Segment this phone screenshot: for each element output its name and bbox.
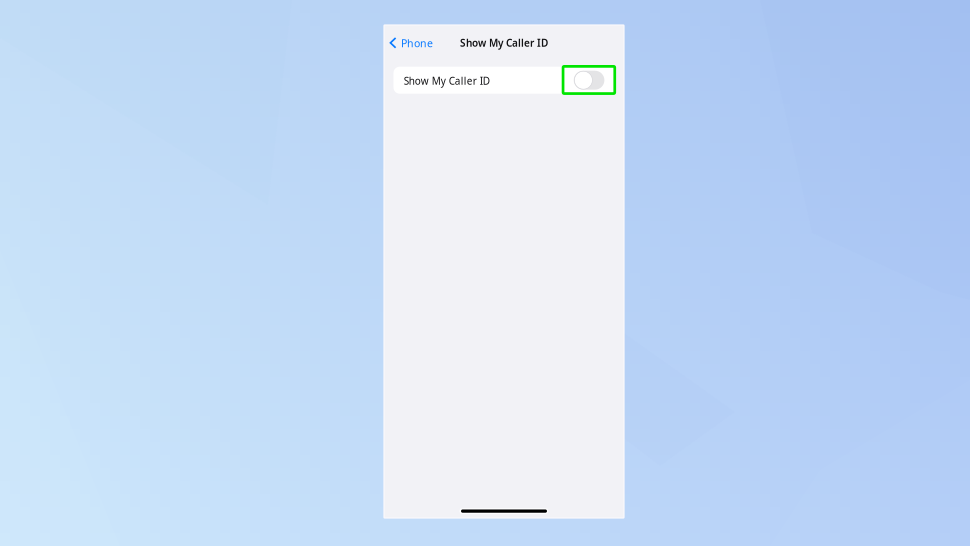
button[interactable]: Show My Caller ID: [393, 67, 615, 94]
button[interactable]: Show My Caller ID, off: [574, 71, 604, 90]
button[interactable]: Phone: [384, 29, 438, 56]
staticText: Show My Caller ID: [460, 36, 548, 50]
staticText: Show My Caller ID: [404, 74, 490, 88]
staticText: Phone: [401, 36, 433, 50]
